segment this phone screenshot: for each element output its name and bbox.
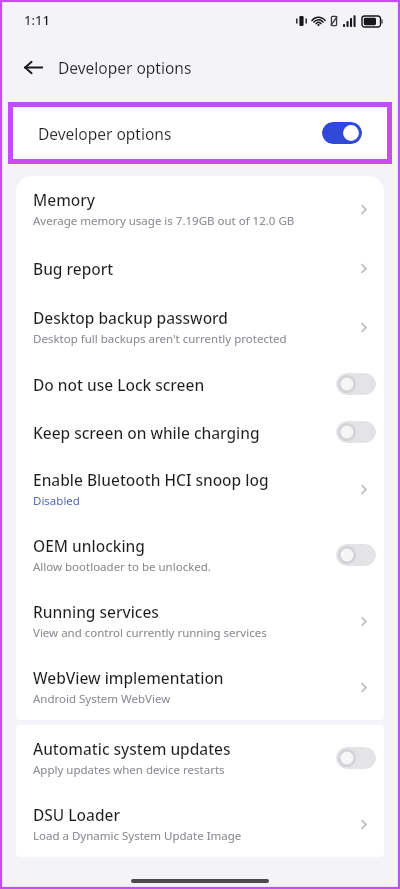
- button[interactable]: Developer options: [13, 107, 387, 159]
- button[interactable]: Open: [350, 476, 376, 502]
- button[interactable]: Bug report: [16, 242, 384, 294]
- button[interactable]: Back: [16, 50, 50, 84]
- staticText: View and control currently running servi…: [33, 625, 267, 641]
- staticText: Android System WebView: [33, 691, 171, 707]
- staticText: Do not use Lock screen: [33, 374, 205, 395]
- button[interactable]: Running services: [16, 588, 384, 654]
- button[interactable]: Do not use Lock screen: [16, 360, 384, 408]
- staticText: Enable Bluetooth HCI snoop log: [33, 469, 269, 490]
- button[interactable]: Keep screen on while charging: [16, 408, 384, 456]
- staticText: Load a Dynamic System Update Image: [33, 828, 242, 844]
- button[interactable]: Open: [350, 674, 376, 700]
- staticText: Bug report: [33, 258, 114, 279]
- staticText: Running services: [33, 601, 159, 622]
- staticText: Memory: [33, 189, 96, 210]
- button[interactable]: WebView implementation: [16, 654, 384, 720]
- button[interactable]: DSU Loader: [16, 791, 384, 857]
- button[interactable]: Automatic system updates: [16, 725, 384, 791]
- staticText: Disabled: [33, 493, 80, 509]
- button[interactable]: Memory: [16, 176, 384, 242]
- button[interactable]: Open: [350, 608, 376, 634]
- button[interactable]: Toggle: [336, 747, 376, 769]
- button[interactable]: Open: [350, 255, 376, 281]
- button[interactable]: Open: [350, 811, 376, 837]
- button[interactable]: Desktop backup password: [16, 294, 384, 360]
- button[interactable]: Open: [350, 314, 376, 340]
- button[interactable]: Open: [350, 196, 376, 222]
- staticText: Apply updates when device restarts: [33, 762, 225, 778]
- staticText: 1:11: [24, 11, 50, 29]
- staticText: Automatic system updates: [33, 738, 231, 759]
- button[interactable]: OEM unlocking: [16, 522, 384, 588]
- button[interactable]: Toggle: [336, 373, 376, 395]
- staticText: Developer options: [38, 123, 322, 144]
- staticText: Developer options: [58, 57, 192, 78]
- staticText: DSU Loader: [33, 804, 121, 825]
- button[interactable]: Toggle: [336, 421, 376, 443]
- staticText: WebView implementation: [33, 667, 224, 688]
- staticText: OEM unlocking: [33, 535, 145, 556]
- staticText: Desktop full backups aren't currently pr…: [33, 331, 287, 347]
- button[interactable]: Enable Bluetooth HCI snoop log: [16, 456, 384, 522]
- button[interactable]: Developer options toggle: [322, 122, 362, 144]
- button[interactable]: Toggle: [336, 544, 376, 566]
- staticText: Average memory usage is 7.19GB out of 12…: [33, 213, 295, 229]
- staticText: Desktop backup password: [33, 307, 228, 328]
- staticText: Keep screen on while charging: [33, 422, 260, 443]
- staticText: Allow bootloader to be unlocked.: [33, 559, 211, 575]
